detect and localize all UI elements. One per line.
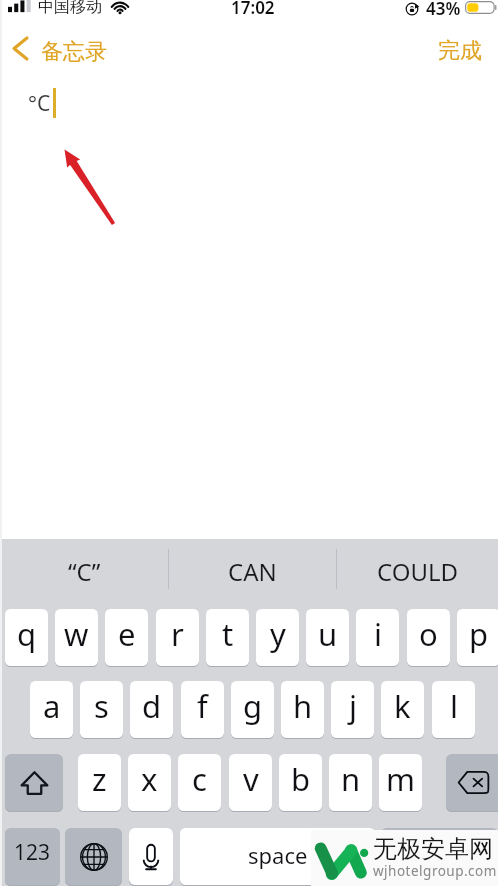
staticText: s [94, 685, 109, 727]
button[interactable]: e [105, 609, 148, 666]
button[interactable]: a [30, 681, 73, 738]
button[interactable]: h [281, 681, 324, 738]
button[interactable]: Dictation [129, 828, 173, 885]
staticText: m [386, 758, 415, 800]
staticText: 17:02 [231, 0, 275, 19]
button[interactable]: CAN [169, 539, 336, 599]
staticText: space [248, 840, 308, 870]
staticText: CAN [228, 555, 277, 588]
staticText: r [171, 613, 184, 655]
button[interactable]: 完成 [422, 28, 498, 74]
staticText: p [469, 613, 489, 655]
staticText: 备忘录 [41, 38, 107, 66]
staticText: d [142, 685, 162, 727]
button[interactable]: d [130, 681, 173, 738]
button[interactable]: o [407, 609, 450, 666]
button[interactable]: u [306, 609, 349, 666]
button[interactable]: q [5, 609, 48, 666]
staticText: q [17, 613, 37, 655]
staticText: b [291, 758, 311, 800]
button[interactable]: k [381, 681, 424, 738]
staticText: COULD [377, 555, 459, 588]
button[interactable]: z [78, 754, 121, 811]
button[interactable]: v [229, 754, 272, 811]
button[interactable]: COULD [337, 539, 498, 599]
button[interactable]: f [181, 681, 224, 738]
button[interactable]: s [80, 681, 123, 738]
button[interactable]: Switch keyboard [65, 828, 122, 885]
button[interactable]: m [379, 754, 422, 811]
staticText: wjhotelgroup.com [373, 862, 497, 880]
staticText: i [374, 613, 382, 655]
button[interactable]: x [128, 754, 171, 811]
staticText: g [243, 685, 263, 727]
staticText: °C [28, 89, 51, 118]
button[interactable]: r [156, 609, 199, 666]
button[interactable]: l [432, 681, 475, 738]
staticText: 中国移动 [38, 0, 102, 17]
staticText: n [341, 758, 361, 800]
staticText: “C” [68, 555, 101, 588]
button[interactable]: c [178, 754, 221, 811]
staticText: l [450, 685, 458, 727]
button[interactable]: w [55, 609, 98, 666]
button[interactable]: p [457, 609, 498, 666]
staticText: 43% [426, 0, 461, 20]
staticText: u [318, 613, 338, 655]
staticText: f [197, 685, 208, 727]
button[interactable]: b [279, 754, 322, 811]
button[interactable]: i [356, 609, 399, 666]
button[interactable]: j [331, 681, 374, 738]
button[interactable]: 123 [5, 828, 60, 885]
button[interactable]: y [256, 609, 299, 666]
button[interactable]: 换行 [381, 828, 498, 885]
button[interactable]: t [206, 609, 249, 666]
button[interactable]: g [231, 681, 274, 738]
staticText: x [141, 758, 158, 800]
staticText: z [92, 758, 107, 800]
staticText: k [394, 685, 411, 727]
staticText: 换行 [419, 842, 461, 868]
staticText: j [349, 685, 357, 727]
staticText: 123 [14, 838, 51, 867]
staticText: t [222, 613, 234, 655]
button[interactable]: 备忘录 [0, 28, 117, 74]
button[interactable]: n [329, 754, 372, 811]
staticText: 完成 [438, 37, 482, 65]
button[interactable]: space [180, 828, 375, 885]
button[interactable]: “C” [0, 539, 168, 599]
staticText: o [419, 613, 438, 655]
staticText: y [270, 613, 286, 655]
staticText: a [43, 685, 61, 727]
staticText: h [293, 685, 313, 727]
staticText: e [118, 613, 136, 655]
staticText: 无极安卓网 [373, 834, 493, 864]
staticText: c [192, 758, 207, 800]
button[interactable]: Backspace [446, 754, 498, 811]
staticText: v [243, 758, 259, 800]
staticText: w [64, 613, 89, 655]
button[interactable]: Shift [5, 754, 63, 811]
